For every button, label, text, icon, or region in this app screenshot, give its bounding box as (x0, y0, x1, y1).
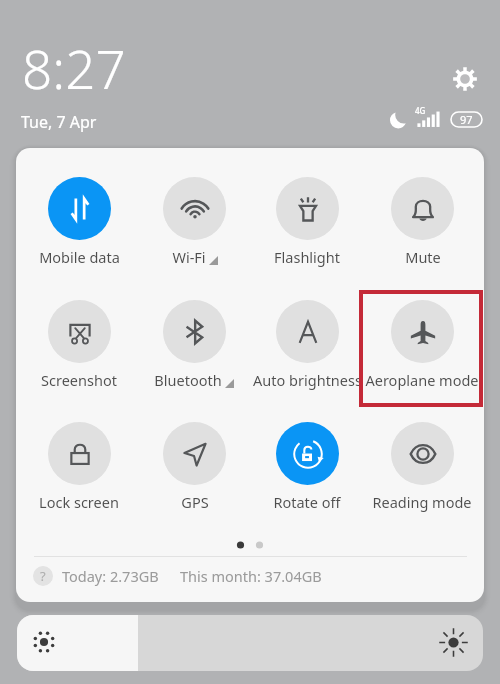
staticText: 4G (415, 105, 426, 116)
button[interactable]: Mobile data (22, 177, 136, 277)
staticText: Mute (405, 247, 441, 267)
staticText: This month: 37.04GB (180, 566, 322, 586)
button[interactable]: Settings (447, 61, 483, 97)
button[interactable]: Brightness (17, 615, 483, 671)
staticText: Screenshot (41, 370, 117, 390)
button[interactable]: Screenshot (22, 300, 136, 400)
button[interactable]: Lock screen (22, 422, 136, 522)
staticText: Flashlight (274, 247, 340, 267)
button[interactable]: Bluetooth (137, 300, 251, 400)
staticText: GPS (181, 492, 209, 512)
button[interactable]: Reading mode (365, 422, 479, 522)
button[interactable]: Wi-Fi (137, 177, 251, 277)
button[interactable]: GPS (137, 422, 251, 522)
staticText: Lock screen (39, 492, 119, 512)
button[interactable]: Aeroplane mode (365, 300, 479, 400)
staticText: Bluetooth (154, 370, 222, 390)
button[interactable]: Flashlight (250, 177, 364, 277)
staticText: 97 (460, 112, 473, 127)
button[interactable]: Mute (365, 177, 479, 277)
button[interactable]: Auto brightness (250, 300, 364, 400)
staticText: Tue, 7 Apr (21, 111, 97, 133)
staticText: Auto brightness (253, 370, 362, 390)
staticText: Mobile data (39, 247, 120, 267)
staticText: Today: 2.73GB (62, 566, 159, 586)
staticText: Wi-Fi (172, 247, 206, 267)
button[interactable]: Rotate off (250, 422, 364, 522)
staticText: Rotate off (273, 492, 341, 512)
staticText: Reading mode (372, 492, 472, 512)
staticText: ? (40, 567, 46, 585)
staticText: 8:27 (22, 32, 126, 104)
staticText: Aeroplane mode (365, 370, 479, 390)
